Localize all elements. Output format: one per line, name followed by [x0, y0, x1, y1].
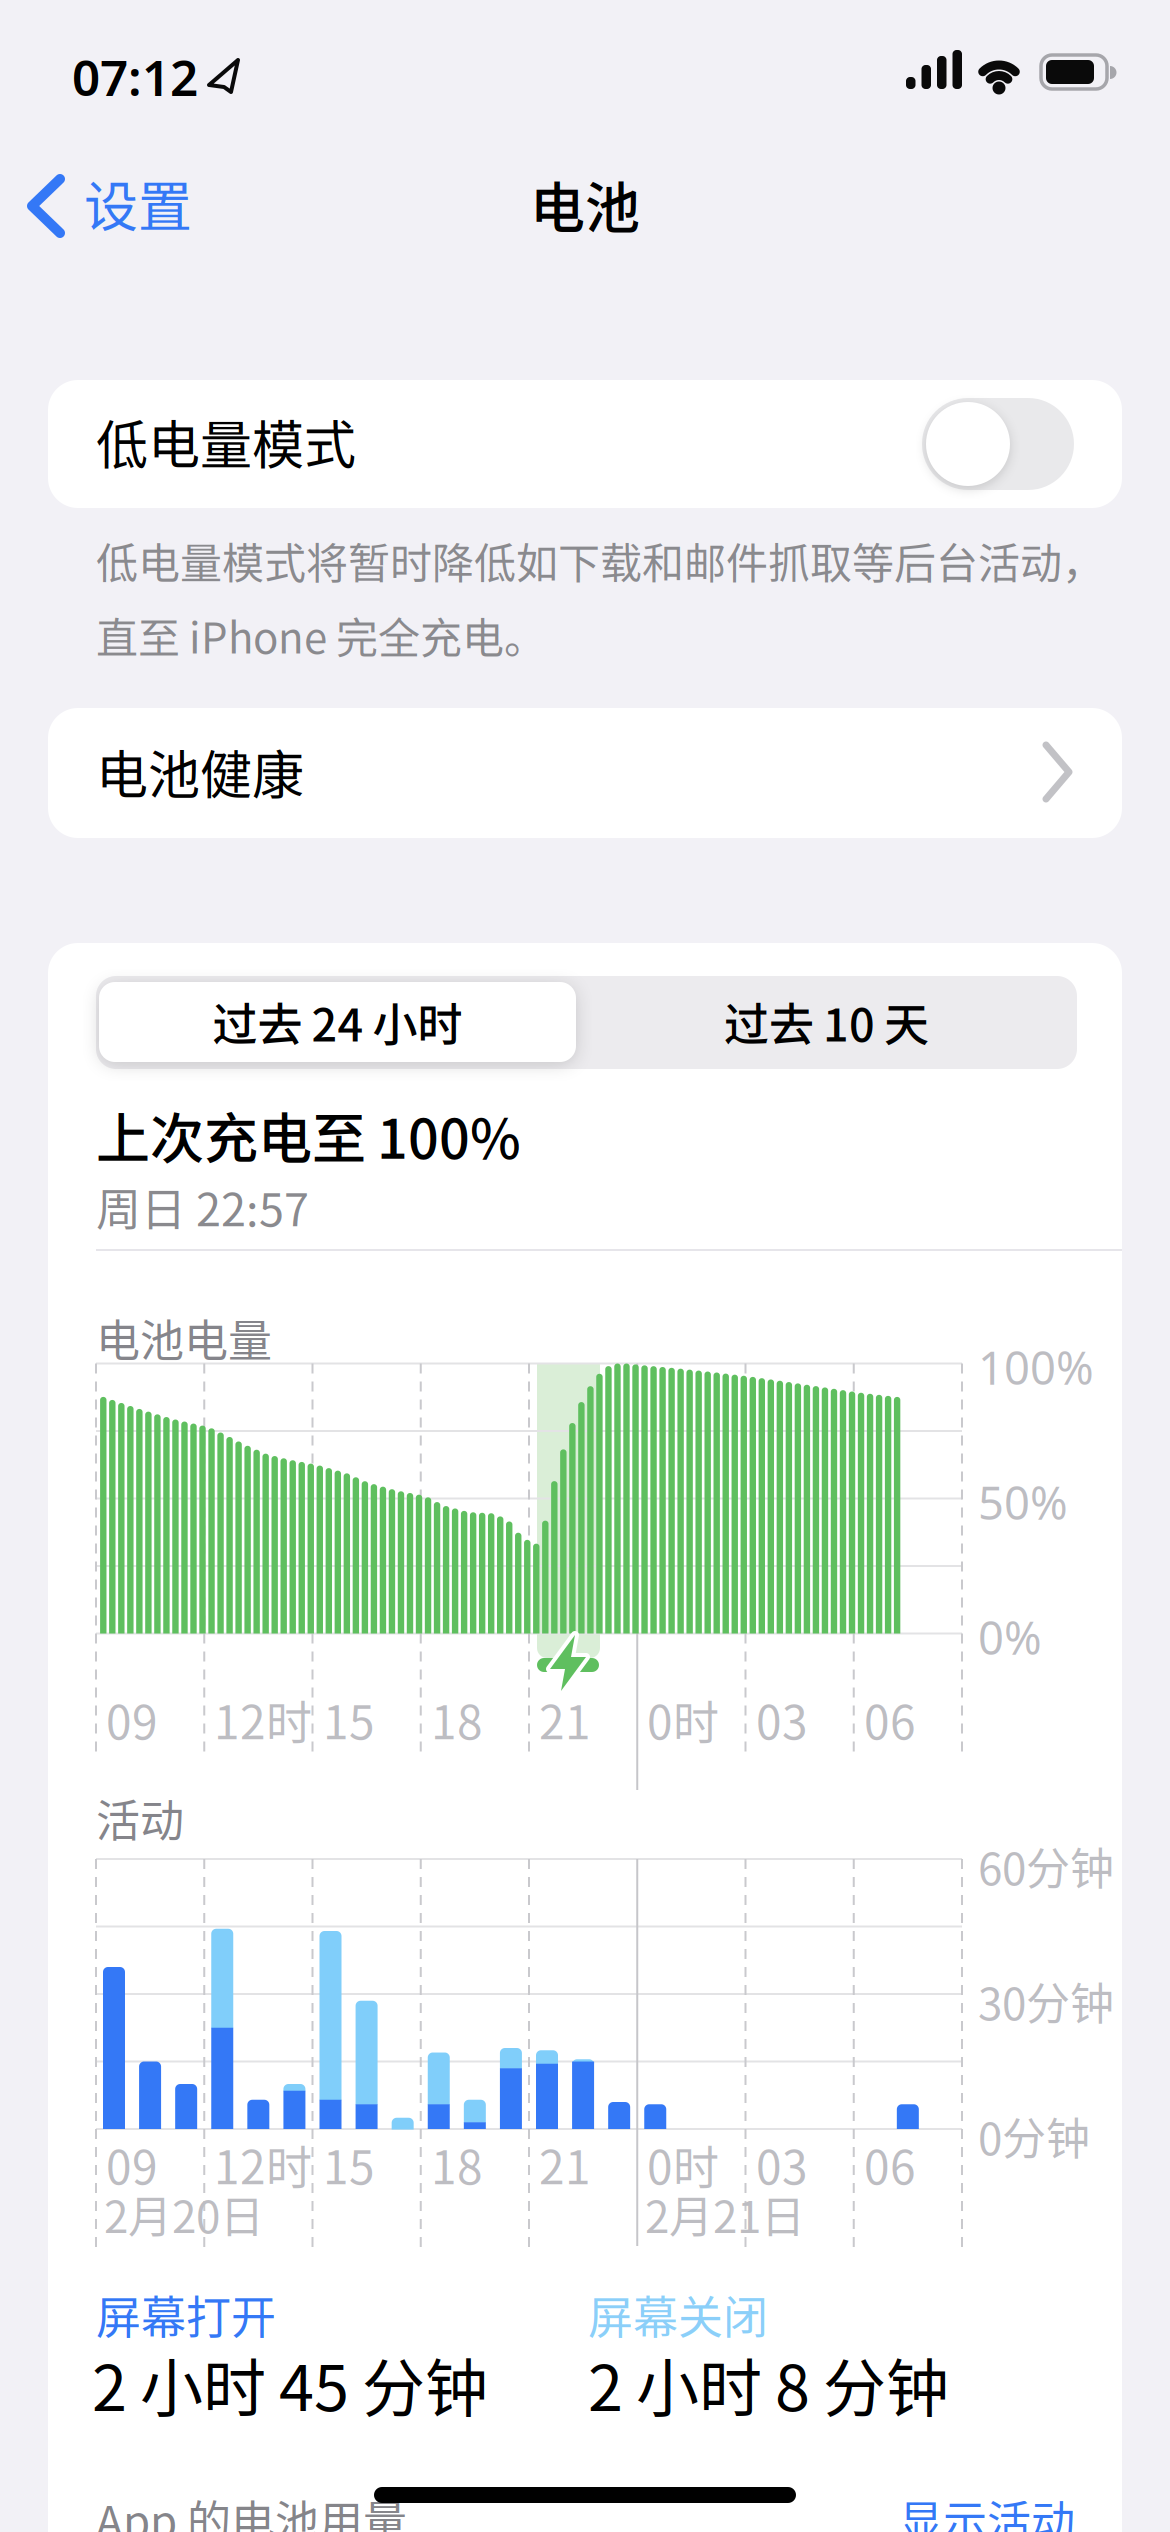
- staticText: 18: [431, 2131, 483, 2198]
- staticText: 2月20日: [104, 2182, 264, 2246]
- button[interactable]: 返回设置: [0, 0, 230, 120]
- staticText: 2 小时 45 分钟: [92, 2338, 488, 2429]
- staticText: 屏幕关闭: [588, 2282, 768, 2347]
- staticText: 12时: [214, 1686, 312, 1753]
- staticText: 显示活动: [899, 2487, 1075, 2532]
- staticText: 2月21日: [645, 2182, 805, 2246]
- button[interactable]: 低电量模式: [48, 380, 1122, 508]
- staticText: 低电量模式: [96, 404, 356, 479]
- staticText: 30分钟: [978, 1969, 1114, 2033]
- staticText: 0时: [647, 1686, 719, 1753]
- staticText: 60分钟: [978, 1834, 1114, 1898]
- staticText: 0时: [647, 2131, 719, 2198]
- staticText: 21: [539, 1686, 591, 1753]
- staticText: 电池电量: [96, 1306, 272, 1370]
- staticText: 09: [106, 1686, 158, 1753]
- staticText: 2 小时 8 分钟: [588, 2338, 949, 2429]
- staticText: 0分钟: [978, 2104, 1090, 2168]
- staticText: 09: [106, 2131, 158, 2198]
- staticText: 电池健康: [96, 734, 304, 809]
- staticText: 低电量模式将暂时降低如下载和邮件抓取等后台活动， 直至 iPhone 完全充电。: [96, 530, 1104, 666]
- staticText: 100%: [978, 1337, 1094, 1397]
- staticText: 过去 10 天: [724, 989, 929, 1055]
- button[interactable]: 过去 10 天: [576, 982, 1077, 1062]
- staticText: 03: [756, 2131, 808, 2198]
- staticText: 15: [323, 1686, 375, 1753]
- staticText: 电池: [530, 164, 640, 244]
- staticText: 50%: [978, 1472, 1068, 1532]
- staticText: 06: [864, 2131, 916, 2198]
- button[interactable]: 显示活动: [899, 2487, 1075, 2532]
- staticText: 设置: [84, 164, 192, 242]
- staticText: 活动: [96, 1786, 184, 1850]
- staticText: 15: [323, 2131, 375, 2198]
- staticText: 周日 22:57: [96, 1174, 309, 1239]
- staticText: 上次充电至 100%: [96, 1096, 521, 1174]
- staticText: 18: [431, 1686, 483, 1753]
- staticText: 03: [756, 1686, 808, 1753]
- button[interactable]: 过去 24 小时: [99, 982, 576, 1062]
- button[interactable]: 电池健康: [48, 708, 1122, 838]
- staticText: 过去 24 小时: [212, 989, 462, 1055]
- staticText: 06: [864, 1686, 916, 1753]
- staticText: 21: [539, 2131, 591, 2198]
- staticText: App 的电池用量: [96, 2487, 407, 2532]
- staticText: 屏幕打开: [96, 2282, 276, 2347]
- staticText: 12时: [214, 2131, 312, 2198]
- staticText: 07:12: [72, 44, 198, 109]
- staticText: 0%: [978, 1607, 1042, 1667]
